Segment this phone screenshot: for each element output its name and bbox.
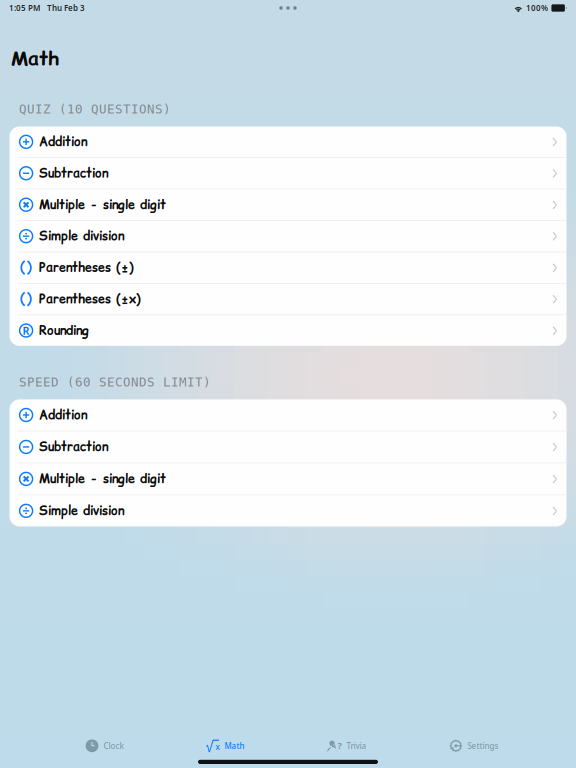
button[interactable]: Parentheses (±) xyxy=(9,252,566,283)
staticText: ? xyxy=(337,739,341,752)
button[interactable]: Parentheses (±x) xyxy=(9,284,566,314)
staticText: Simple division xyxy=(39,227,124,245)
staticText: Trivia xyxy=(346,740,366,751)
button[interactable]: Subtraction xyxy=(9,158,566,189)
staticText: Settings xyxy=(467,740,498,751)
staticText: Thu Feb 3 xyxy=(47,3,85,13)
staticText: Math xyxy=(11,45,59,72)
staticText: Simple division xyxy=(39,502,124,519)
button[interactable]: Simple division xyxy=(9,221,566,251)
staticText: Addition xyxy=(39,406,87,424)
button[interactable]: Multiple - single digit xyxy=(9,189,566,220)
staticText: 100% xyxy=(526,3,548,13)
button[interactable]: Addition xyxy=(9,126,566,157)
staticText: x xyxy=(215,742,219,752)
staticText: R xyxy=(23,323,30,338)
button[interactable]: Addition xyxy=(9,399,566,431)
staticText: Subtraction xyxy=(39,165,108,182)
staticText: Multiple - single digit xyxy=(39,470,166,487)
staticText: QUIZ (10 QUESTIONS) xyxy=(19,102,171,116)
staticText: Subtraction xyxy=(39,438,108,456)
staticText: Parentheses (±x) xyxy=(39,290,141,308)
staticText: Multiple - single digit xyxy=(39,196,166,213)
staticText: Math xyxy=(224,740,244,751)
staticText: SPEED (60 SECONDS LIMIT) xyxy=(19,375,211,389)
staticText: Clock xyxy=(103,740,123,751)
button[interactable]: Settings xyxy=(449,733,498,759)
button[interactable]: Multiple - single digit xyxy=(9,463,566,494)
staticText: Addition xyxy=(39,133,87,150)
button[interactable]: Simple division xyxy=(9,495,566,526)
button[interactable]: x xyxy=(206,733,244,759)
button[interactable]: Subtraction xyxy=(9,431,566,462)
staticText: 1:05 PM xyxy=(9,3,40,13)
button[interactable]: Clock xyxy=(86,733,123,759)
button[interactable]: ? xyxy=(327,733,366,759)
button[interactable]: R xyxy=(9,315,566,346)
staticText: Rounding xyxy=(39,322,89,339)
staticText: Parentheses (±) xyxy=(39,259,134,276)
